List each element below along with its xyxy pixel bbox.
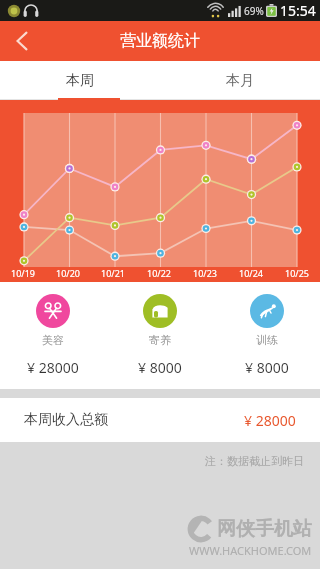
staticText: ¥ 28000 [27, 358, 79, 377]
staticText: 15:54 [280, 1, 316, 20]
staticText: 69% [244, 4, 264, 18]
button[interactable]: 本月 [160, 61, 320, 100]
staticText: ¥ 28000 [244, 411, 296, 430]
staticText: 10/22 [147, 267, 171, 279]
staticText: 10/21 [101, 267, 125, 279]
staticText: 寄养 [149, 333, 171, 347]
staticText: 10/19 [11, 267, 35, 279]
button[interactable]: 美容 [0, 294, 106, 377]
staticText: 营业额统计 [120, 31, 200, 51]
staticText: 训练 [256, 333, 278, 347]
staticText: 美容 [42, 333, 64, 347]
staticText: 10/23 [193, 267, 217, 279]
staticText: 注：数据截止到昨日 [205, 454, 304, 468]
staticText: WWW.HACKHOME.COM [189, 543, 312, 558]
staticText: ¥ 8000 [245, 358, 289, 377]
button[interactable]: Back [0, 21, 44, 61]
staticText: 10/20 [56, 267, 80, 279]
staticText: 本周收入总额 [24, 411, 108, 429]
button[interactable]: 训练 [213, 294, 320, 377]
staticText: 网侠手机站 [217, 517, 312, 541]
staticText: 10/25 [285, 267, 309, 279]
button[interactable]: 寄养 [106, 294, 213, 377]
button[interactable]: 本周 [0, 61, 160, 100]
staticText: 10/24 [239, 267, 263, 279]
staticText: 本周 [66, 72, 94, 90]
staticText: ¥ 8000 [138, 358, 182, 377]
staticText: 本月 [226, 72, 254, 90]
